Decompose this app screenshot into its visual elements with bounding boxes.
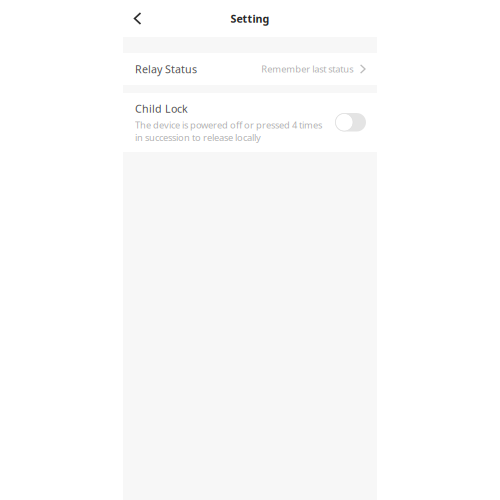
button[interactable]: Child Lock [335,101,377,131]
staticText: Child Lock [135,101,188,116]
staticText: Remember last status [261,63,353,75]
staticText: Relay Status [135,62,197,76]
button[interactable]: Back [124,3,151,33]
staticText: Setting [230,11,269,26]
staticText: The device is powered off or pressed 4 t… [135,119,322,143]
button[interactable]: Relay Status [123,53,377,85]
